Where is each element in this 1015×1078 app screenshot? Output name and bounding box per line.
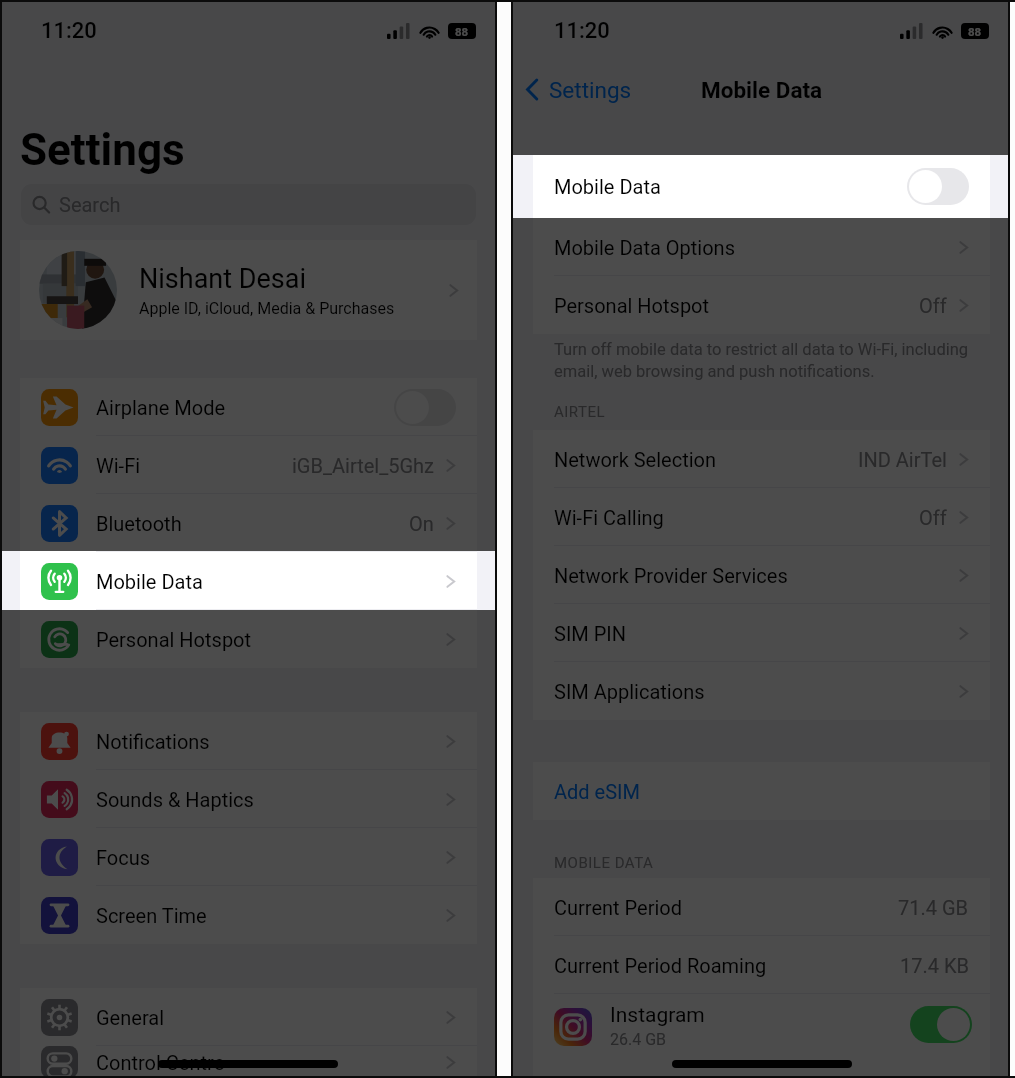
staticText: 88 <box>455 25 469 38</box>
button[interactable]: Wi-Fi Calling <box>533 488 990 546</box>
staticText: Network Provider Services <box>554 564 788 587</box>
button[interactable]: SIM PIN <box>533 604 990 662</box>
staticText: SIM Applications <box>554 680 705 703</box>
button[interactable]: SIM Applications <box>533 662 990 720</box>
staticText: Nishant Desai <box>139 263 306 295</box>
button[interactable]: Notifications <box>20 712 477 770</box>
button[interactable]: Turn on <box>907 168 969 205</box>
staticText: Current Period Roaming <box>554 954 767 977</box>
staticText: 26.4 GB <box>610 1030 667 1049</box>
button[interactable]: Instagram <box>554 994 972 1078</box>
staticText: Apple ID, iCloud, Media & Purchases <box>139 299 395 318</box>
staticText: Bluetooth <box>96 512 182 535</box>
staticText: Turn off mobile data to restrict all dat… <box>554 340 994 381</box>
button[interactable]: Personal Hotspot <box>533 276 990 334</box>
staticText: Mobile Data <box>96 570 203 593</box>
button[interactable]: Search <box>21 184 476 225</box>
button[interactable]: Wi-Fi <box>20 436 477 494</box>
staticText: Mobile Data <box>701 77 823 103</box>
staticText: Wi-Fi Calling <box>554 506 664 529</box>
button[interactable]: Settings <box>524 76 632 103</box>
staticText: Search <box>59 193 121 216</box>
staticText: Airplane Mode <box>96 396 226 419</box>
staticText: SIM PIN <box>554 622 627 645</box>
button[interactable]: Mobile Data Options <box>533 218 990 276</box>
staticText: Current Period <box>554 896 682 919</box>
button[interactable]: Current Period Roaming <box>533 936 990 994</box>
staticText: AIRTEL <box>554 403 606 421</box>
button[interactable]: Add eSIM <box>533 762 990 820</box>
staticText: Settings <box>549 77 632 103</box>
button[interactable]: Mobile Data <box>533 155 990 218</box>
staticText: Instagram <box>610 1003 705 1028</box>
button[interactable]: General <box>20 988 477 1046</box>
staticText: Sounds & Haptics <box>96 788 254 811</box>
button[interactable]: Turn off <box>910 1006 972 1043</box>
staticText: 17.4 KB <box>900 954 969 977</box>
staticText: Wi-Fi <box>96 454 141 477</box>
staticText: Focus <box>96 846 151 869</box>
staticText: Personal Hotspot <box>554 294 710 317</box>
button[interactable]: Nishant Desai <box>39 240 459 340</box>
staticText: 88 <box>968 25 982 38</box>
staticText: 71.4 GB <box>898 896 969 919</box>
button[interactable]: Personal Hotspot <box>20 610 477 668</box>
staticText: Screen Time <box>96 904 207 927</box>
staticText: Notifications <box>96 730 210 753</box>
staticText: Mobile Data <box>554 175 661 198</box>
staticText: MOBILE DATA <box>554 854 654 872</box>
staticText: Off <box>919 506 947 529</box>
staticText: Mobile Data Options <box>554 236 735 259</box>
staticText: iGB_Airtel_5Ghz <box>292 454 434 477</box>
button[interactable]: Control Centre <box>20 1046 477 1078</box>
button[interactable]: Airplane Mode <box>20 378 477 436</box>
button[interactable]: Screen Time <box>20 886 477 944</box>
button[interactable]: Network Selection <box>533 430 990 488</box>
button[interactable]: Network Provider Services <box>533 546 990 604</box>
button[interactable]: Bluetooth <box>20 494 477 552</box>
staticText: On <box>409 512 434 535</box>
staticText: Settings <box>20 124 185 176</box>
button[interactable]: Sounds & Haptics <box>20 770 477 828</box>
staticText: 11:20 <box>41 18 97 44</box>
staticText: Personal Hotspot <box>96 628 252 651</box>
staticText: Off <box>919 294 947 317</box>
staticText: General <box>96 1006 165 1029</box>
staticText: 11:20 <box>554 18 610 44</box>
staticText: Network Selection <box>554 448 717 471</box>
staticText: Control Centre <box>96 1051 225 1074</box>
button[interactable]: Current Period <box>533 878 990 936</box>
staticText: Add eSIM <box>554 780 640 803</box>
button[interactable]: Turn on <box>394 389 456 426</box>
staticText: IND AirTel <box>858 448 947 471</box>
button[interactable]: Focus <box>20 828 477 886</box>
button[interactable]: Mobile Data <box>20 552 477 610</box>
